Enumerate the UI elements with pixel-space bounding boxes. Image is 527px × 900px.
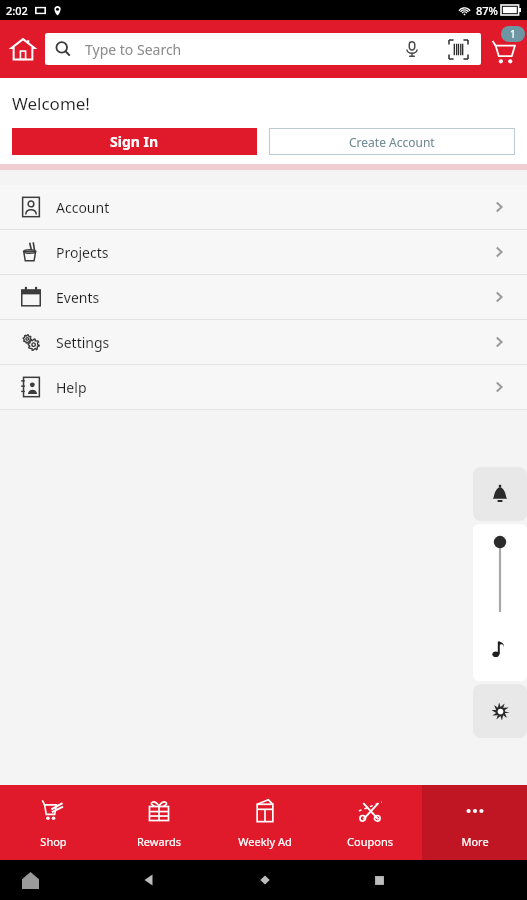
button[interactable]: Create Account [269,128,515,155]
button[interactable]: Settings [0,320,527,364]
button[interactable]: Shop [0,785,106,860]
staticText: Shop [40,834,67,849]
button[interactable]: Rewards [106,785,212,860]
button[interactable]: Coupons [317,785,422,860]
button[interactable]: Cart, 1 item [481,20,527,78]
button[interactable]: Weekly Ad [212,785,317,860]
staticText: 1 [510,27,516,41]
staticText: Weekly Ad [238,834,292,849]
button[interactable]: Sound settings [473,684,527,738]
staticText: Coupons [347,834,393,849]
staticText: Type to Search [85,40,182,59]
staticText: Create Account [349,134,435,150]
button[interactable]: Scan barcode [443,34,473,64]
button[interactable]: Account [0,185,527,229]
staticText: More [461,834,489,849]
button[interactable]: Volume slider [473,524,527,681]
staticText: Rewards [137,834,181,849]
staticText: Sign In [110,132,159,151]
button[interactable]: Voice search [397,34,427,64]
button[interactable]: Home [0,20,45,78]
staticText: 87% [476,3,498,18]
staticText: Projects [56,243,109,262]
staticText: 2:02 [6,3,28,18]
button[interactable]: Help [0,365,527,409]
button[interactable]: Events [0,275,527,319]
button[interactable]: Ring volume [473,467,527,521]
staticText: Settings [56,333,110,352]
button[interactable]: Sign In [12,128,257,155]
staticText: Account [56,198,110,217]
button[interactable]: More [422,785,527,860]
staticText: Help [56,378,87,397]
button[interactable]: Projects [0,230,527,274]
button[interactable]: Type to Search [45,33,481,65]
staticText: Events [56,288,100,307]
staticText: Welcome! [12,92,90,115]
